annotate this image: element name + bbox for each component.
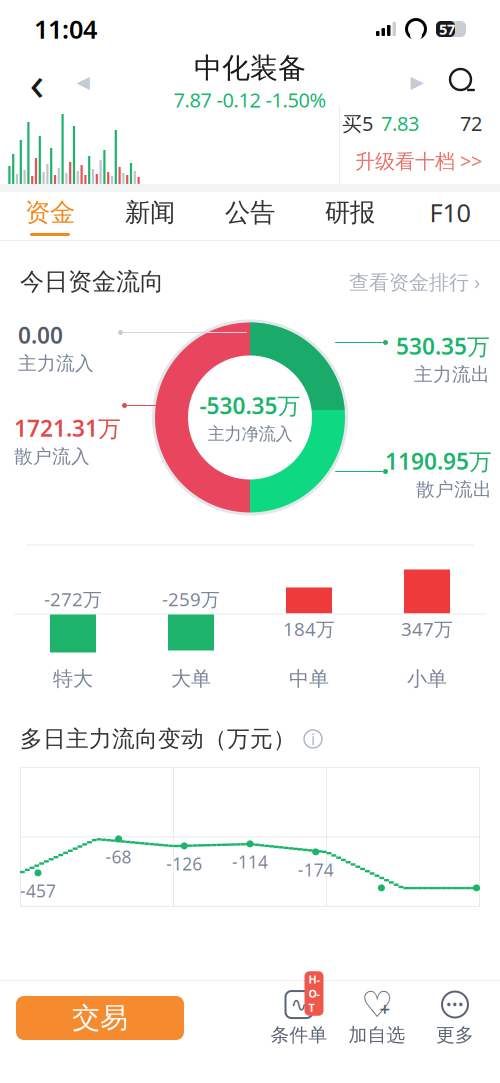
staticText: 查看资金排行 › bbox=[349, 268, 480, 295]
staticText: ∿ bbox=[290, 993, 307, 1016]
staticText: 买5 bbox=[342, 110, 373, 137]
staticText: 加自选 bbox=[348, 1023, 405, 1046]
staticText: 多日主力流向变动（万元） bbox=[20, 725, 296, 753]
button[interactable]: 交易 bbox=[16, 996, 184, 1040]
button[interactable]: ••• bbox=[416, 989, 494, 1046]
staticText: 更多 bbox=[436, 1023, 474, 1046]
staticText: 大单 bbox=[171, 666, 211, 691]
staticText: -530.35万 bbox=[199, 390, 300, 420]
staticText: -126 bbox=[166, 852, 202, 875]
staticText: 530.35万 bbox=[396, 331, 490, 361]
staticText: 1190.95万 bbox=[385, 446, 492, 476]
staticText: 主力流入 bbox=[18, 352, 94, 375]
staticText: ♡ bbox=[361, 984, 393, 1025]
staticText: 11:04 bbox=[34, 12, 97, 46]
button[interactable]: 研报 bbox=[300, 192, 400, 240]
staticText: ▶ bbox=[410, 72, 423, 92]
staticText: -114 bbox=[232, 850, 268, 873]
button[interactable]: 查看资金排行 › bbox=[349, 268, 480, 295]
staticText: 散户流入 bbox=[14, 445, 90, 468]
staticText: + bbox=[379, 996, 390, 1021]
staticText: 交易 bbox=[72, 1001, 128, 1035]
staticText: 0.00 bbox=[18, 320, 63, 350]
button[interactable]: 搜索 bbox=[438, 58, 488, 106]
staticText: F10 bbox=[429, 196, 470, 229]
staticText: 研报 bbox=[325, 197, 375, 228]
staticText: -259万 bbox=[162, 587, 220, 611]
staticText: ◀ bbox=[76, 72, 89, 92]
staticText: 72 bbox=[460, 110, 482, 137]
staticText: 升级看十档 >> bbox=[355, 147, 482, 174]
staticText: 公告 bbox=[225, 197, 275, 228]
staticText: 57 bbox=[439, 19, 455, 39]
button[interactable]: 返回 bbox=[12, 58, 62, 106]
staticText: 散户流出 bbox=[416, 478, 492, 501]
button[interactable]: 升级看十档 >> bbox=[355, 147, 482, 174]
staticText: 资金 bbox=[25, 197, 75, 228]
button[interactable]: ♡ bbox=[338, 989, 416, 1046]
staticText: 1721.31万 bbox=[14, 413, 121, 443]
button[interactable]: 上一只 bbox=[62, 58, 104, 106]
staticText: -174 bbox=[298, 858, 334, 881]
staticText: 小单 bbox=[407, 666, 447, 691]
staticText: 347万 bbox=[401, 616, 453, 641]
staticText: -272万 bbox=[44, 587, 102, 611]
staticText: 新闻 bbox=[125, 197, 175, 228]
staticText: 特大 bbox=[53, 666, 93, 691]
button[interactable]: ∿ bbox=[260, 989, 338, 1046]
staticText: 中单 bbox=[289, 666, 329, 691]
staticText: -68 bbox=[106, 845, 132, 868]
staticText: 今日资金流向 bbox=[20, 267, 164, 296]
staticText: i bbox=[311, 728, 315, 749]
staticText: ••• bbox=[446, 995, 464, 1014]
staticText: 184万 bbox=[283, 616, 335, 641]
staticText: 主力流出 bbox=[414, 363, 490, 386]
staticText: 7.83 bbox=[381, 110, 419, 137]
button[interactable]: F10 bbox=[400, 192, 500, 240]
button[interactable]: 资金 bbox=[0, 192, 100, 240]
staticText: 主力净流入 bbox=[207, 423, 292, 445]
staticText: HOT bbox=[308, 972, 319, 1015]
button[interactable]: 公告 bbox=[200, 192, 300, 240]
staticText: 7.87 -0.12 -1.50% bbox=[173, 86, 326, 113]
button[interactable]: 新闻 bbox=[100, 192, 200, 240]
staticText: 中化装备 bbox=[194, 51, 306, 85]
staticText: 条件单 bbox=[270, 1023, 327, 1046]
staticText: ‹ bbox=[29, 50, 44, 114]
staticText: -457 bbox=[20, 879, 56, 902]
button[interactable]: 说明 bbox=[304, 728, 322, 749]
button[interactable]: 下一只 bbox=[396, 58, 438, 106]
